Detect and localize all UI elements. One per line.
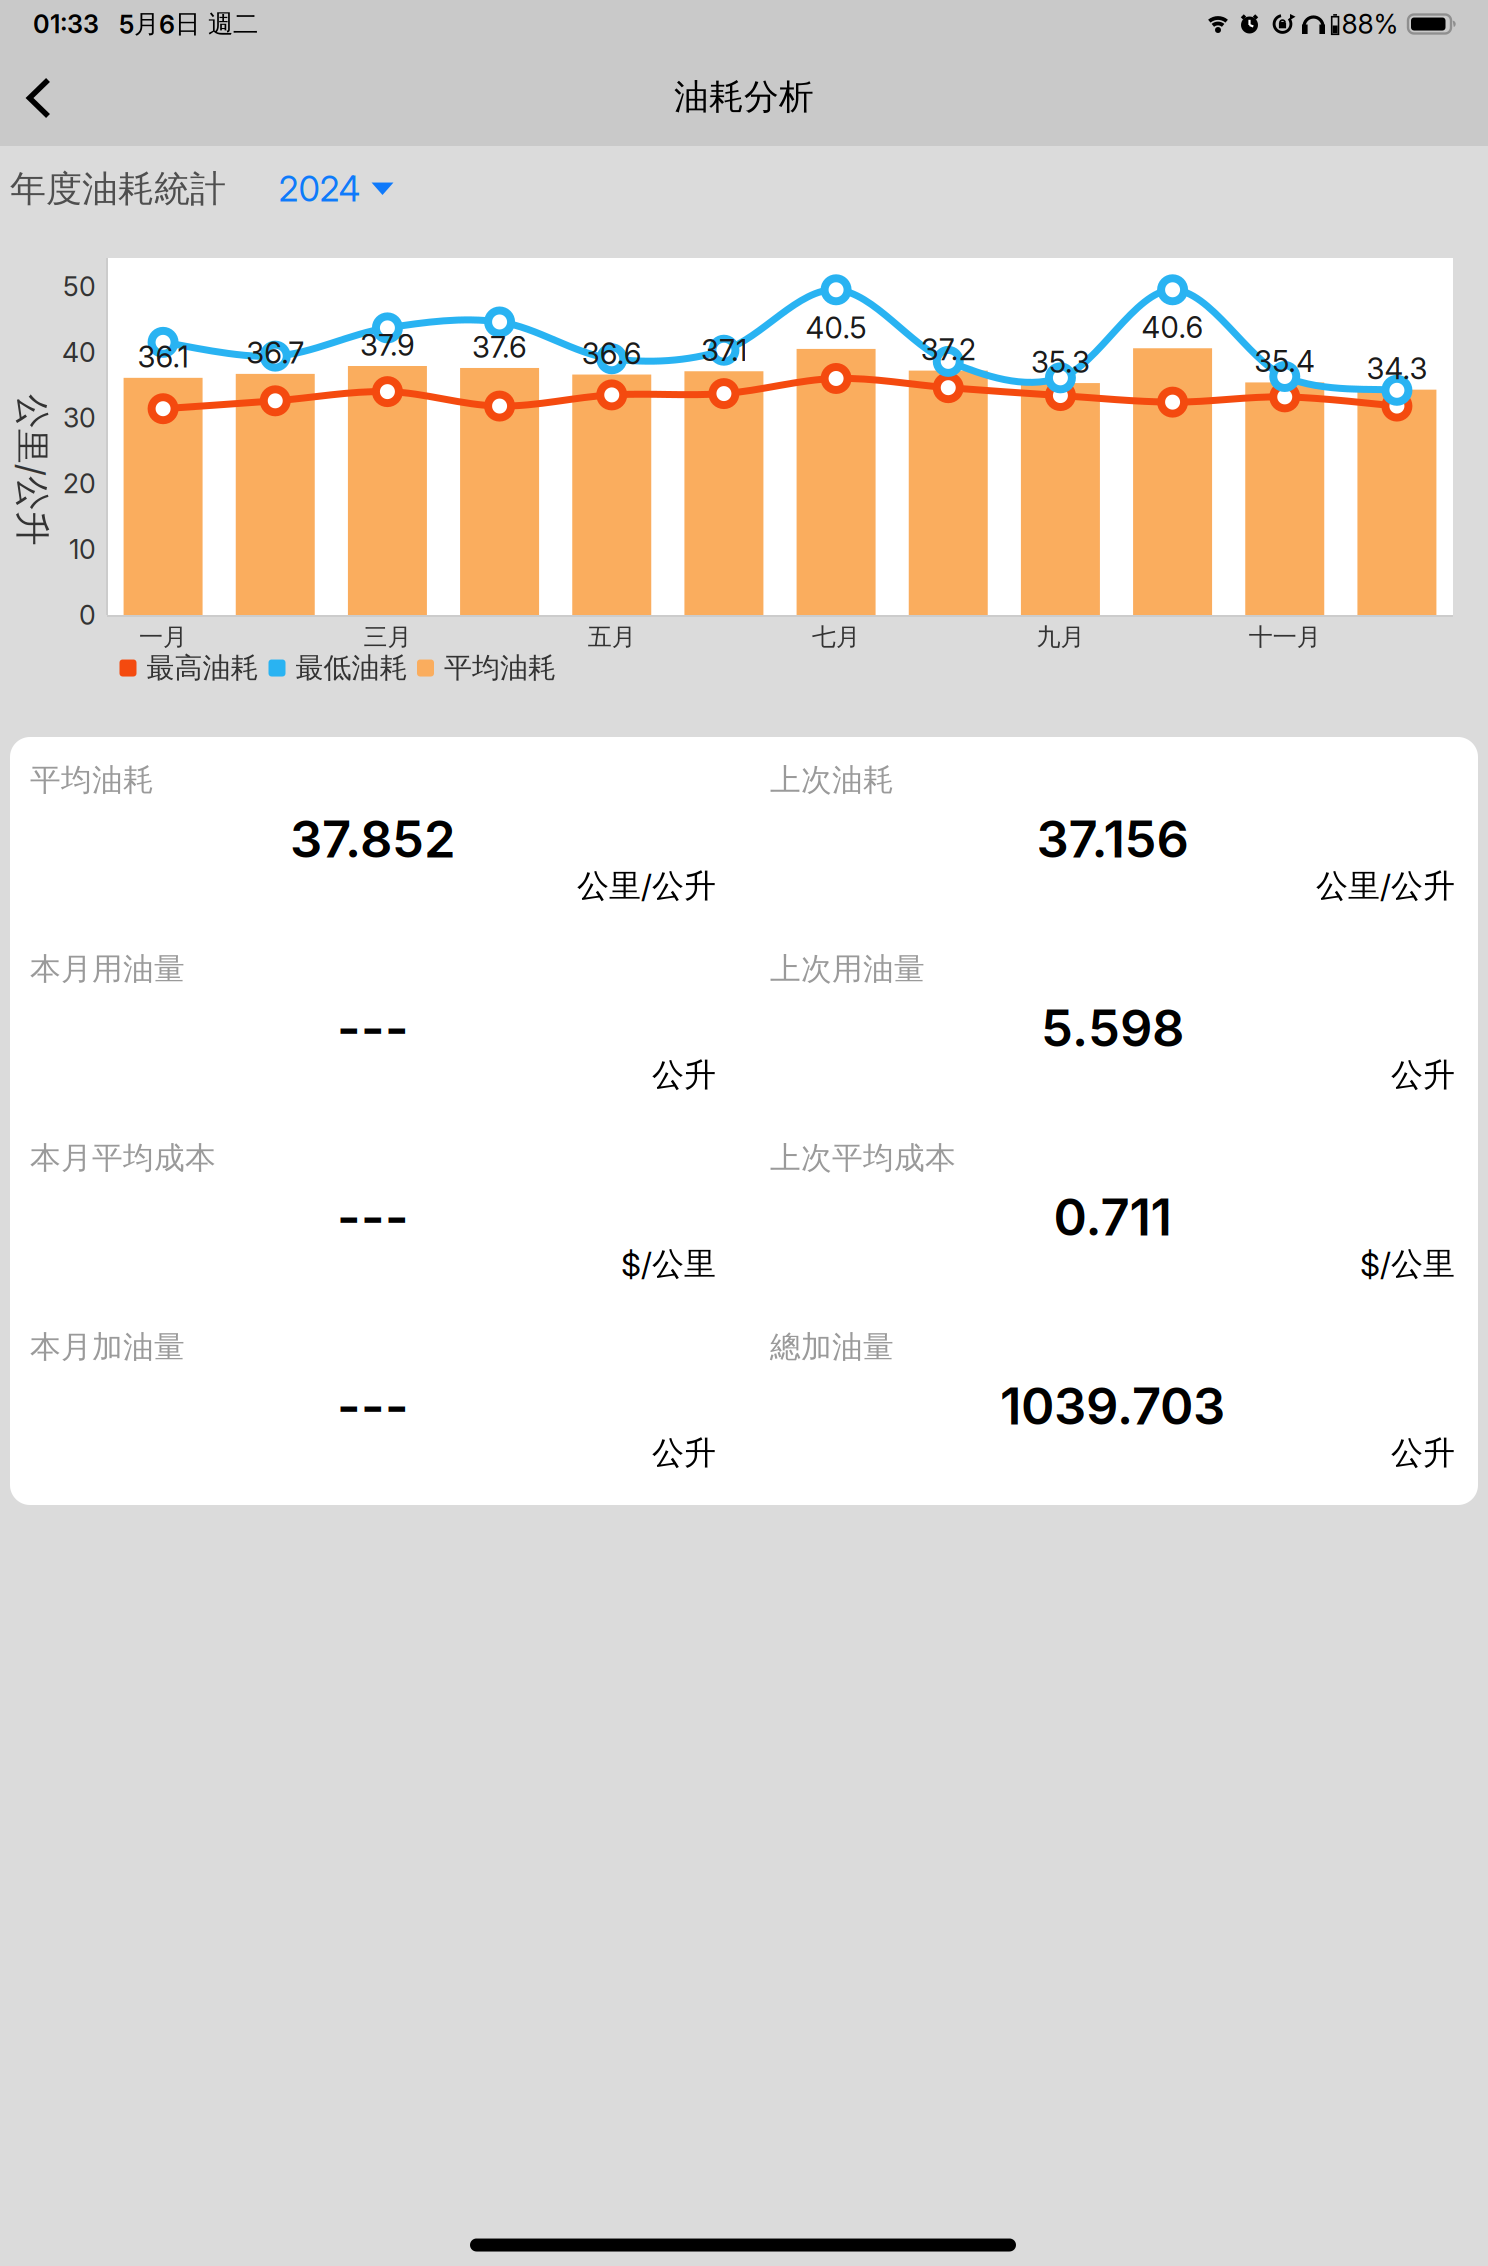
staticText: 上次油耗 [770, 761, 894, 799]
staticText: 20 [63, 468, 96, 499]
staticText: 公里/公升 [0, 449, 108, 491]
staticText: 50 [63, 271, 96, 302]
staticText: 34.3 [1366, 351, 1427, 386]
staticText: 最低油耗 [295, 651, 407, 685]
staticText: 37.852 [290, 809, 456, 869]
staticText: 0 [79, 599, 96, 631]
staticText: 總加油量 [770, 1328, 894, 1366]
staticText: 油耗分析 [674, 76, 814, 118]
staticText: 01:33 [33, 9, 99, 39]
staticText: 上次平均成本 [770, 1139, 956, 1177]
staticText: 一月 [139, 622, 187, 652]
staticText: 37.6 [472, 330, 527, 364]
staticText: 35.3 [1031, 345, 1090, 379]
staticText: 36.6 [582, 336, 642, 371]
staticText: 36.1 [138, 339, 189, 374]
staticText: 40 [62, 336, 96, 368]
staticText: 40.5 [806, 311, 867, 345]
staticText: 0.711 [1053, 1187, 1171, 1247]
staticText: 37.2 [921, 332, 976, 367]
staticText: --- [337, 998, 409, 1058]
staticText: 最高油耗 [146, 651, 258, 685]
staticText: 本月加油量 [30, 1328, 185, 1366]
staticText: 本月用油量 [30, 950, 185, 988]
staticText: 公里/公升 [577, 866, 716, 906]
button[interactable]: 最低油耗 [268, 651, 407, 685]
staticText: 公升 [652, 1055, 716, 1095]
staticText: 88% [1341, 8, 1398, 40]
staticText: 5.598 [1041, 998, 1184, 1058]
staticText: 公里/公升 [1316, 866, 1455, 906]
staticText: 公升 [652, 1433, 716, 1473]
staticText: 10 [69, 534, 96, 565]
staticText: 36.7 [246, 336, 304, 370]
staticText: 1039.703 [1000, 1376, 1225, 1436]
button[interactable]: 最高油耗 [119, 651, 258, 685]
staticText: 35.4 [1254, 344, 1315, 379]
staticText: 30 [63, 402, 96, 434]
staticText: 37.156 [1036, 809, 1188, 869]
staticText: 40.6 [1142, 310, 1204, 345]
staticText: $/公里 [1360, 1244, 1455, 1284]
staticText: 七月 [812, 622, 860, 652]
staticText: $/公里 [621, 1244, 716, 1284]
staticText: 五月 [588, 622, 636, 652]
button[interactable]: 平均油耗 [417, 651, 556, 685]
staticText: 平均油耗 [444, 651, 556, 685]
staticText: 公升 [1391, 1055, 1455, 1095]
staticText: 九月 [1036, 622, 1084, 652]
staticText: 37.1 [701, 333, 747, 368]
staticText: 三月 [363, 622, 411, 652]
staticText: 2024 [278, 169, 360, 209]
staticText: 年度油耗統計 [10, 167, 226, 211]
button[interactable]: Back [21, 73, 73, 123]
staticText: 十一月 [1249, 622, 1321, 652]
staticText: --- [337, 1376, 409, 1436]
staticText: 公升 [1391, 1433, 1455, 1473]
button[interactable]: 2024 [278, 169, 393, 209]
staticText: 本月平均成本 [30, 1139, 216, 1177]
staticText: 平均油耗 [30, 761, 154, 799]
staticText: 5月6日 週二 [119, 8, 258, 39]
staticText: --- [337, 1187, 409, 1247]
staticText: 37.9 [360, 328, 415, 362]
staticText: 上次用油量 [770, 950, 925, 988]
